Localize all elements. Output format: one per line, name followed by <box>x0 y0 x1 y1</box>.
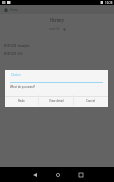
staticText: 08-30 10:28 - Incomplete <box>4 45 30 48</box>
button[interactable]: Home <box>46 167 69 182</box>
staticText: Home <box>10 8 18 12</box>
button[interactable]: Recent apps <box>69 167 92 182</box>
staticText: Cancel <box>86 99 96 103</box>
staticText: View detail <box>49 99 64 103</box>
staticText: History <box>0 18 114 24</box>
button[interactable]: 08-30 10:28 - Incomplete <box>0 45 114 53</box>
button[interactable]: Cancel <box>74 95 108 106</box>
staticText: Redo <box>18 99 25 103</box>
button[interactable]: View detail <box>39 95 73 106</box>
button[interactable]: Home <box>0 5 20 14</box>
staticText: score 6% <box>49 27 60 31</box>
staticText: 10:28 <box>105 1 113 5</box>
staticText: What do you want? <box>10 85 36 89</box>
button[interactable]: Redo <box>5 95 38 106</box>
staticText: 08-30 10:25 - 6/15 <box>4 53 23 56</box>
button[interactable]: Back <box>23 167 46 182</box>
staticText: Choice <box>11 73 21 77</box>
